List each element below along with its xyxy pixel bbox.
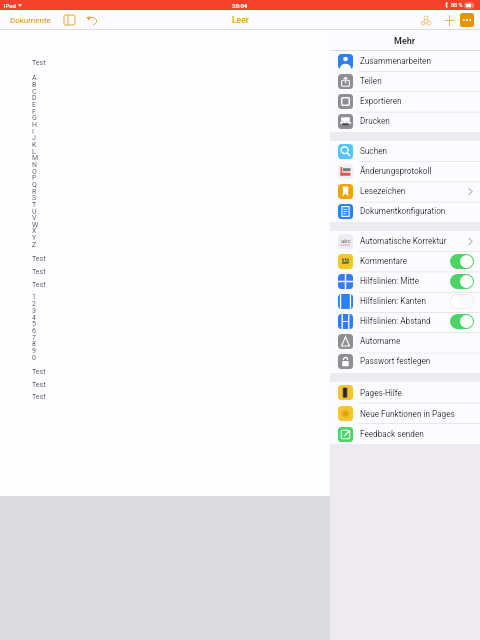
staticText: Hilfslinien: Abstand xyxy=(360,316,431,326)
staticText: N xyxy=(32,161,37,169)
staticText: A xyxy=(32,74,37,82)
staticText: Automatische Korrektur xyxy=(360,236,447,246)
staticText: Lesezeichen xyxy=(360,186,406,196)
staticText: L xyxy=(32,148,36,156)
button[interactable]: Zusammenarbeiten xyxy=(330,51,480,71)
button[interactable]: Hilfslinien: Kanten xyxy=(330,291,480,311)
staticText: Test xyxy=(32,255,46,263)
staticText: Neue Funktionen in Pages xyxy=(360,409,455,419)
staticText: J xyxy=(32,134,36,142)
button[interactable]: Insert xyxy=(439,10,460,30)
staticText: Hilfslinien: Mitte xyxy=(360,276,420,286)
staticText: V xyxy=(32,214,37,222)
staticText: Teilen xyxy=(360,76,382,86)
button[interactable]: Dokumente xyxy=(0,12,58,29)
staticText: Pages-Hilfe xyxy=(360,388,402,398)
staticText: 88 % xyxy=(451,2,463,8)
button[interactable]: Lesezeichen xyxy=(330,181,480,201)
staticText: U xyxy=(32,208,37,216)
button[interactable]: Hilfslinien: Mitte xyxy=(330,271,480,291)
staticText: 4 xyxy=(32,314,36,322)
staticText: X xyxy=(32,227,37,235)
button[interactable]: Exportieren xyxy=(330,91,480,111)
staticText: 2 xyxy=(32,300,36,308)
staticText: C xyxy=(32,88,37,96)
staticText: 5 xyxy=(32,320,36,328)
staticText: K xyxy=(32,141,37,149)
staticText: 6 xyxy=(32,327,36,335)
button[interactable]: abc xyxy=(330,231,480,251)
button[interactable]: Teilen xyxy=(330,71,480,91)
staticText: Test xyxy=(32,368,46,376)
staticText: Test xyxy=(32,59,46,67)
button[interactable]: Suchen xyxy=(330,141,480,161)
staticText: 9 xyxy=(32,347,36,355)
staticText: H xyxy=(32,121,37,129)
staticText: Drucken xyxy=(360,116,390,126)
button[interactable]: Dokumentkonfiguration xyxy=(330,201,480,221)
staticText: Test xyxy=(32,281,46,289)
staticText: 1 xyxy=(32,293,36,301)
staticText: P xyxy=(32,174,37,182)
staticText: R xyxy=(32,188,37,196)
staticText: G xyxy=(32,114,37,122)
button[interactable]: Änderungsprotokoll xyxy=(330,161,480,181)
button[interactable]: Feedback senden xyxy=(330,424,480,444)
button[interactable]: Autorname xyxy=(330,331,480,351)
staticText: Test xyxy=(32,268,46,276)
staticText: E xyxy=(32,101,36,109)
button[interactable]: Kommentare xyxy=(330,251,480,271)
staticText: Dokumente xyxy=(10,16,51,25)
staticText: Y xyxy=(32,234,37,242)
staticText: Q xyxy=(32,181,37,189)
staticText: iPad xyxy=(4,2,16,9)
staticText: D xyxy=(32,94,37,102)
button[interactable]: Passwort festlegen xyxy=(330,351,480,371)
staticText: Test xyxy=(32,393,46,401)
button[interactable]: Neue Funktionen in Pages xyxy=(330,403,480,424)
staticText: Kommentare xyxy=(360,256,408,266)
staticText: O xyxy=(32,168,37,176)
staticText: 0 xyxy=(32,354,36,362)
staticText: M xyxy=(32,154,39,162)
staticText: Änderungsprotokoll xyxy=(360,166,432,176)
staticText: F xyxy=(32,108,36,116)
staticText: Leer xyxy=(232,15,249,25)
staticText: B xyxy=(32,81,37,89)
staticText: Exportieren xyxy=(360,96,402,106)
staticText: 20:04 xyxy=(232,2,248,9)
staticText: I xyxy=(32,128,34,136)
button[interactable]: More xyxy=(460,13,474,27)
button[interactable]: Pages-Hilfe xyxy=(330,382,480,403)
staticText: T xyxy=(32,201,37,209)
staticText: Mehr xyxy=(394,36,416,47)
staticText: Z xyxy=(32,241,37,249)
staticText: 3 xyxy=(32,307,36,315)
staticText: abc xyxy=(341,237,351,244)
staticText: W xyxy=(32,221,39,229)
button[interactable]: Hilfslinien: Abstand xyxy=(330,311,480,331)
staticText: Dokumentkonfiguration xyxy=(360,206,446,216)
staticText: Feedback senden xyxy=(360,429,424,439)
staticText: Passwort festlegen xyxy=(360,356,431,366)
button[interactable]: View options xyxy=(58,10,80,30)
button[interactable]: Undo xyxy=(80,10,102,30)
button[interactable]: Off xyxy=(450,294,474,309)
staticText: Zusammenarbeiten xyxy=(360,56,431,66)
staticText: 7 xyxy=(32,334,36,342)
button[interactable]: Collaborate xyxy=(413,10,439,30)
button[interactable]: Drucken xyxy=(330,111,480,131)
staticText: Autorname xyxy=(360,336,401,346)
button[interactable]: On xyxy=(450,274,474,289)
button[interactable]: On xyxy=(450,314,474,329)
staticText: Suchen xyxy=(360,146,388,156)
staticText: Hilfslinien: Kanten xyxy=(360,296,426,306)
button[interactable]: On xyxy=(450,254,474,269)
staticText: Test xyxy=(32,381,46,389)
staticText: 8 xyxy=(32,340,36,348)
staticText: S xyxy=(32,194,37,202)
